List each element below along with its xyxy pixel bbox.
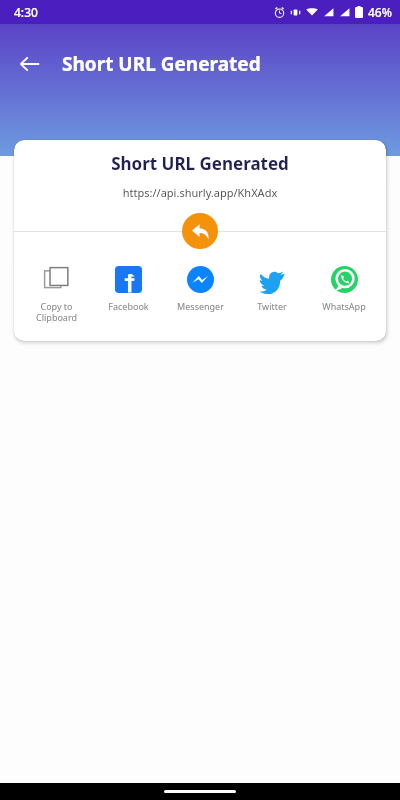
button[interactable]: Copy to Clipboard	[20, 262, 92, 327]
button[interactable]: Back	[8, 48, 52, 80]
staticText: 4:30	[14, 4, 38, 20]
button[interactable]: Facebook	[92, 262, 164, 316]
staticText: Facebook	[108, 300, 149, 312]
staticText: 46%	[368, 4, 392, 20]
staticText: Copy to Clipboard	[36, 300, 77, 323]
staticText: Short URL Generated	[62, 51, 261, 77]
staticText: Short URL Generated	[14, 152, 386, 175]
staticText: WhatsApp	[322, 300, 366, 312]
staticText: Twitter	[257, 300, 287, 312]
button[interactable]: Share	[182, 213, 218, 249]
staticText: https://api.shurly.app/KhXAdx	[14, 185, 386, 200]
staticText: Messenger	[177, 300, 224, 312]
button[interactable]: Twitter	[236, 262, 308, 316]
button[interactable]: Messenger	[164, 262, 236, 316]
button[interactable]: WhatsApp	[308, 262, 380, 316]
